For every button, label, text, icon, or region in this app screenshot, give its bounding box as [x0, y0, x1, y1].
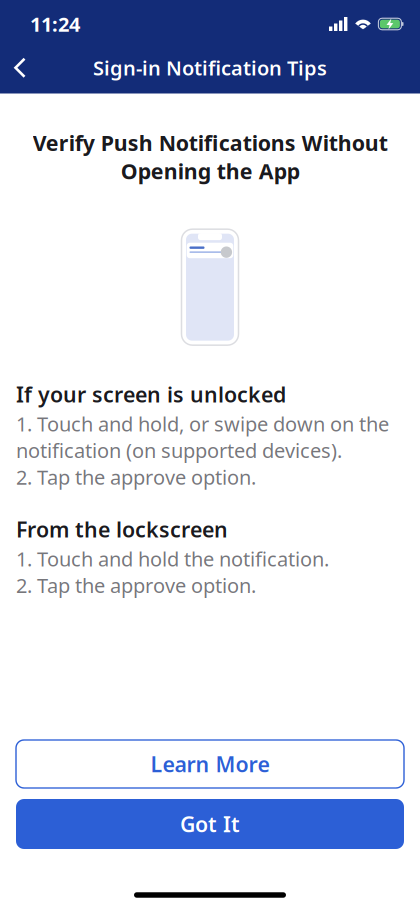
staticText: 1. Touch and hold, or swipe down on the …: [16, 410, 389, 490]
button[interactable]: Got It: [0, 799, 420, 849]
staticText: From the lockscreen: [16, 515, 228, 543]
staticText: Verify Push Notifications Without Openin…: [32, 128, 387, 185]
staticText: If your screen is unlocked: [16, 380, 286, 408]
staticText: Got It: [180, 810, 240, 838]
staticText: Learn More: [150, 750, 269, 778]
staticText: Sign-in Notification Tips: [93, 54, 327, 81]
button[interactable]: Learn More: [0, 740, 420, 788]
staticText: 11:24: [30, 11, 80, 37]
staticText: 1. Touch and hold the notification. 2. T…: [16, 545, 329, 599]
button[interactable]: Back: [0, 48, 26, 88]
